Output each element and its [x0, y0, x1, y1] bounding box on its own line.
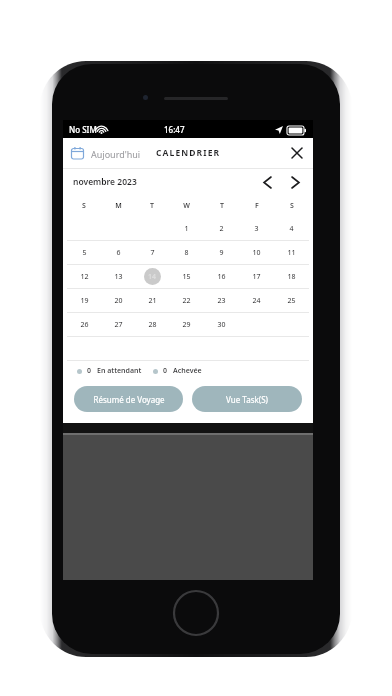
button[interactable]: 18 — [274, 265, 309, 288]
staticText: 22 — [182, 296, 191, 306]
staticText: 3 — [254, 224, 259, 234]
staticText: En attendant — [97, 366, 142, 376]
staticText: 13 — [114, 272, 123, 282]
staticText: Achevée — [173, 366, 202, 376]
staticText: 24 — [252, 296, 261, 306]
staticText: 8 — [184, 248, 189, 258]
button[interactable]: 17 — [239, 265, 274, 288]
button[interactable]: 11 — [274, 241, 309, 264]
staticText: 14 — [148, 272, 157, 282]
staticText: 25 — [287, 296, 296, 306]
staticText: 26 — [80, 320, 89, 330]
button[interactable]: 28 — [135, 313, 169, 336]
button[interactable]: Vue Task(S) — [192, 386, 302, 412]
button[interactable]: 7 — [135, 241, 169, 264]
staticText: T — [220, 201, 224, 211]
button[interactable]: Mois suivant — [285, 172, 305, 192]
staticText: 11 — [287, 248, 296, 258]
staticText: Aujourd'hui — [91, 148, 141, 160]
staticText: 10 — [252, 248, 261, 258]
staticText: 20 — [114, 296, 123, 306]
button[interactable]: 13 — [101, 265, 135, 288]
button[interactable]: 25 — [274, 289, 309, 312]
staticText: 0 — [87, 366, 92, 376]
button[interactable]: 5 — [67, 241, 101, 264]
staticText: 19 — [80, 296, 89, 306]
button[interactable]: 9 — [204, 241, 239, 264]
button[interactable]: 3 — [239, 217, 274, 240]
button[interactable]: 19 — [67, 289, 101, 312]
staticText: 9 — [219, 248, 224, 258]
staticText: 17 — [252, 272, 261, 282]
button[interactable]: 21 — [135, 289, 169, 312]
staticText: S — [82, 201, 86, 211]
staticText: 5 — [82, 248, 87, 258]
button[interactable]: 15 — [169, 265, 204, 288]
staticText: 12 — [80, 272, 89, 282]
button[interactable]: 29 — [169, 313, 204, 336]
button[interactable]: 10 — [239, 241, 274, 264]
staticText: novembre 2023 — [73, 176, 137, 188]
button[interactable]: Mois précédent — [257, 172, 277, 192]
button[interactable]: 30 — [204, 313, 239, 336]
staticText: 29 — [182, 320, 191, 330]
button[interactable]: 4 — [274, 217, 309, 240]
staticText: M — [115, 201, 122, 211]
button[interactable]: Home — [172, 589, 220, 637]
staticText: 0 — [163, 366, 168, 376]
staticText: No SIM — [69, 124, 97, 135]
button[interactable]: 12 — [67, 265, 101, 288]
staticText: 16 — [217, 272, 226, 282]
button[interactable]: 1 — [169, 217, 204, 240]
staticText: Vue Task(S) — [226, 394, 268, 405]
button[interactable]: 16 — [204, 265, 239, 288]
staticText: 16:47 — [164, 124, 185, 135]
staticText: 4 — [289, 224, 294, 234]
button[interactable]: Fermer — [287, 143, 307, 163]
staticText: 23 — [217, 296, 226, 306]
staticText: T — [150, 201, 154, 211]
staticText: F — [255, 201, 259, 211]
staticText: 15 — [182, 272, 191, 282]
button[interactable]: 26 — [67, 313, 101, 336]
button[interactable]: Aujourd'hui — [71, 147, 141, 160]
staticText: 1 — [184, 224, 189, 234]
button[interactable]: 20 — [101, 289, 135, 312]
button[interactable]: 23 — [204, 289, 239, 312]
staticText: 7 — [150, 248, 155, 258]
staticText: CALENDRIER — [156, 147, 221, 159]
staticText: W — [183, 201, 190, 211]
button[interactable]: 8 — [169, 241, 204, 264]
staticText: 27 — [114, 320, 123, 330]
staticText: 30 — [217, 320, 226, 330]
button[interactable]: 27 — [101, 313, 135, 336]
staticText: 18 — [287, 272, 296, 282]
button[interactable]: 6 — [101, 241, 135, 264]
button[interactable]: 2 — [204, 217, 239, 240]
staticText: 6 — [116, 248, 121, 258]
button[interactable]: 14 — [135, 265, 169, 288]
staticText: 21 — [148, 296, 157, 306]
staticText: S — [290, 201, 294, 211]
staticText: 2 — [219, 224, 224, 234]
staticText: 28 — [148, 320, 157, 330]
button[interactable]: 24 — [239, 289, 274, 312]
staticText: Résumé de Voyage — [93, 394, 165, 405]
button[interactable]: 22 — [169, 289, 204, 312]
button[interactable]: Résumé de Voyage — [74, 386, 183, 412]
